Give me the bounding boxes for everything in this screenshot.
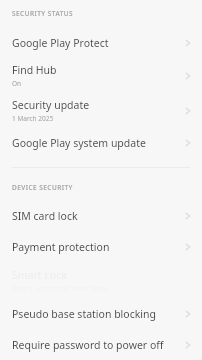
staticText: Google Play Protect: [12, 36, 109, 50]
button[interactable]: Security update: [0, 93, 202, 128]
staticText: 1 March 2025: [12, 114, 54, 123]
staticText: On: [12, 79, 22, 88]
button[interactable]: SIM card lock: [0, 201, 202, 231]
button[interactable]: Require password to power off: [0, 329, 202, 360]
staticText: Payment protection: [12, 240, 110, 254]
button[interactable]: Find Hub: [0, 58, 202, 93]
staticText: Google Play system update: [12, 136, 146, 150]
button[interactable]: Pseudo base station blocking: [0, 298, 202, 329]
staticText: Pseudo base station blocking: [12, 307, 156, 321]
staticText: Require password to power off: [12, 338, 164, 352]
staticText: SIM card lock: [12, 209, 78, 223]
button[interactable]: Payment protection: [0, 231, 202, 262]
button[interactable]: Google Play Protect: [0, 27, 202, 58]
staticText: Security update: [12, 98, 90, 112]
button[interactable]: Google Play system update: [0, 128, 202, 158]
staticText: SECURITY STATUS: [12, 9, 74, 18]
staticText: DEVICE SECURITY: [12, 183, 73, 192]
staticText: Find Hub: [12, 63, 57, 77]
